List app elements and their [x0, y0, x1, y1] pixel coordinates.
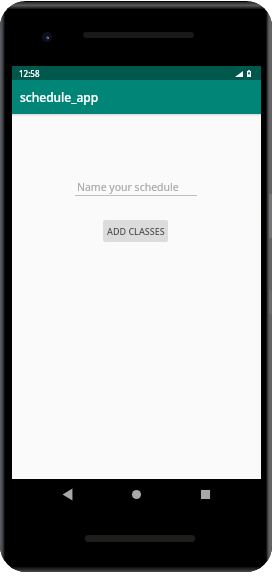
staticText: 12:58	[19, 68, 40, 79]
staticText: ADD CLASSES	[107, 225, 165, 237]
button[interactable]: Name your schedule	[75, 180, 197, 196]
staticText: schedule_app	[20, 89, 99, 105]
button[interactable]: ADD CLASSES	[103, 220, 168, 242]
staticText: Name your schedule	[77, 180, 179, 194]
button[interactable]: Recents	[192, 481, 218, 507]
button[interactable]: Home	[123, 481, 149, 507]
button[interactable]: Back	[54, 481, 80, 507]
